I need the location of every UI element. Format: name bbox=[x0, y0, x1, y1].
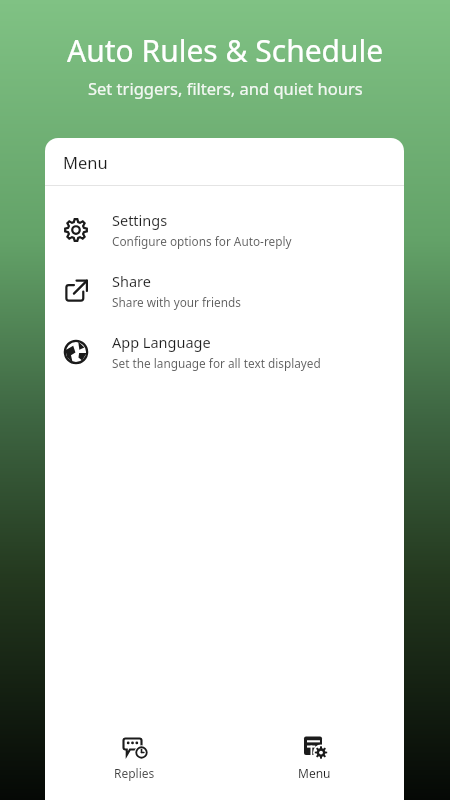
staticText: Share with your friends bbox=[112, 294, 241, 310]
button[interactable]: Menu bbox=[224, 726, 404, 792]
other: Menu bbox=[302, 734, 327, 759]
other: Replies bbox=[122, 734, 147, 759]
staticText: App Language bbox=[112, 332, 211, 352]
staticText: Menu bbox=[298, 765, 331, 781]
button[interactable]: Replies bbox=[45, 726, 224, 792]
button[interactable]: Share bbox=[45, 260, 404, 321]
staticText: Set the language for all text displayed bbox=[112, 355, 321, 371]
staticText: Settings bbox=[112, 210, 168, 230]
staticText: Replies bbox=[114, 765, 155, 781]
staticText: Menu bbox=[63, 151, 108, 173]
staticText: Share bbox=[112, 271, 151, 291]
staticText: Auto Rules & Schedule bbox=[67, 30, 384, 71]
staticText: Set triggers, filters, and quiet hours bbox=[88, 77, 363, 99]
staticText: Configure options for Auto-reply bbox=[112, 233, 292, 249]
button[interactable]: Settings bbox=[45, 199, 404, 260]
button[interactable]: App Language bbox=[45, 321, 404, 382]
